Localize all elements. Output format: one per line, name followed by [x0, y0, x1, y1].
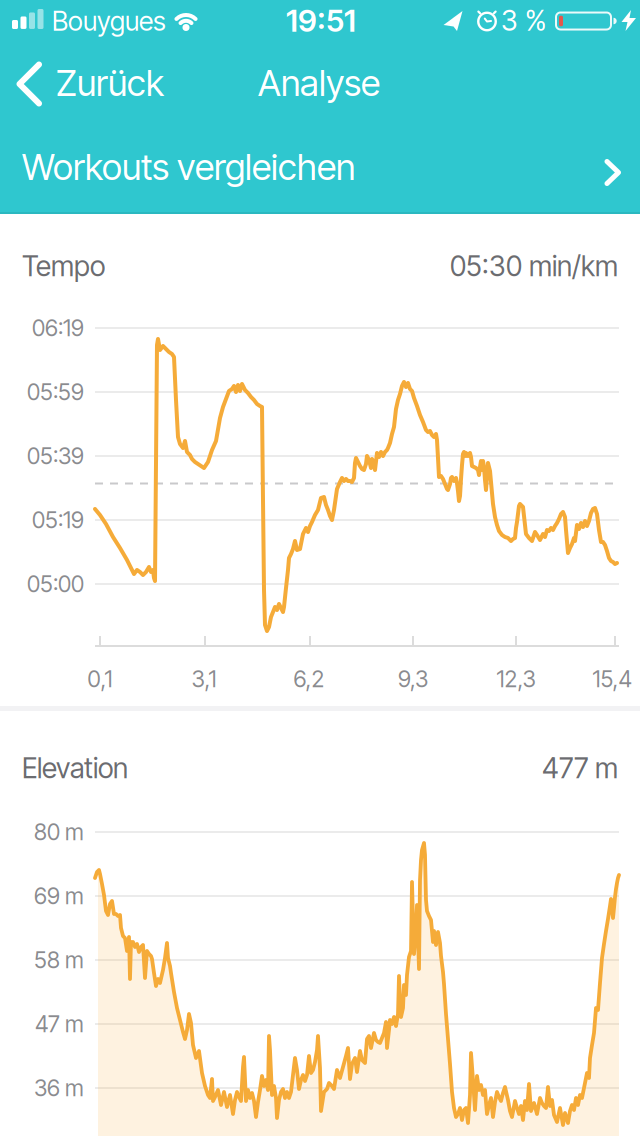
staticText: 3,1 [191, 665, 216, 693]
staticText: Zurück [56, 61, 164, 105]
staticText: Tempo [22, 249, 105, 283]
staticText: 12,3 [496, 665, 535, 693]
staticText: 15,4 [592, 665, 631, 693]
staticText: Workouts vergleichen [22, 145, 355, 189]
staticText: Bouygues [52, 5, 166, 37]
staticText: 477 m [542, 751, 618, 785]
staticText: 36 m [34, 1074, 84, 1102]
staticText: 6,2 [293, 665, 324, 693]
staticText: 69 m [34, 882, 84, 910]
staticText: Elevation [22, 751, 128, 785]
staticText: 9,3 [398, 665, 428, 693]
staticText: Analyse [258, 61, 380, 105]
staticText: 3 % [501, 4, 546, 37]
staticText: 19:51 [286, 2, 356, 39]
staticText: 47 m [35, 1010, 84, 1038]
staticText: 58 m [34, 946, 84, 974]
staticText: 05:19 [32, 506, 84, 534]
staticText: 05:59 [27, 378, 84, 406]
staticText: 06:19 [32, 314, 84, 342]
staticText: 80 m [34, 818, 84, 846]
staticText: 05:30 min/km [450, 249, 618, 283]
staticText: 0,1 [87, 665, 112, 693]
staticText: 05:00 [27, 570, 84, 598]
staticText: 05:39 [27, 442, 84, 470]
